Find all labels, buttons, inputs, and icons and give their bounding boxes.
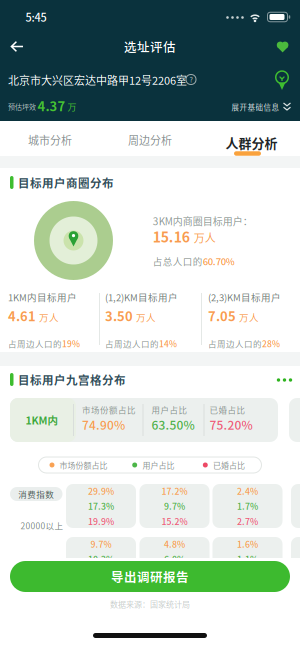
- staticText: 占周边人口的: [105, 337, 159, 350]
- staticText: 周边分析: [128, 132, 172, 148]
- staticText: 2.7%: [237, 515, 258, 527]
- staticText: 2.4%: [237, 484, 258, 497]
- staticText: 7.05: [208, 306, 236, 325]
- staticText: 消费指数: [18, 488, 54, 500]
- staticText: 13.1%: [88, 568, 114, 580]
- staticText: 4.61: [8, 306, 36, 325]
- staticText: (2,3)KM目标用户: [208, 290, 281, 304]
- staticText: 万人: [136, 310, 156, 324]
- staticText: 万人: [194, 230, 216, 246]
- staticText: 市场份额占比: [82, 403, 136, 416]
- staticText: 17.2%: [161, 484, 187, 497]
- staticText: 已婚占比: [213, 459, 245, 471]
- staticText: 占周边人口的: [208, 337, 262, 350]
- staticText: 人群分析: [225, 133, 277, 152]
- staticText: 19%: [62, 337, 80, 350]
- staticText: 预估坪效: [8, 101, 36, 111]
- button[interactable]: 人群分析: [221, 129, 281, 156]
- staticText: ?: [189, 74, 192, 84]
- staticText: 1KM内: [25, 412, 58, 428]
- staticText: 目标用户商圈分布: [18, 174, 114, 191]
- staticText: 用户占比: [142, 459, 174, 471]
- staticText: 4.8%: [164, 537, 185, 550]
- staticText: 1.6%: [237, 537, 258, 550]
- staticText: 1.1%: [237, 553, 258, 565]
- button[interactable]: Favorite: [271, 36, 294, 58]
- staticText: 已婚占比: [209, 403, 245, 416]
- staticText: 目标用户九宫格分布: [18, 371, 126, 388]
- staticText: 万人: [39, 310, 59, 324]
- staticText: 市场份额占比: [59, 459, 107, 471]
- staticText: 选址评估: [124, 37, 176, 55]
- staticText: 9.7%: [90, 537, 111, 550]
- staticText: 万人: [239, 310, 259, 324]
- staticText: 万: [67, 100, 76, 113]
- staticText: 19.9%: [88, 515, 114, 527]
- staticText: (1,2)KM目标用户: [105, 290, 178, 304]
- staticText: 城市分析: [28, 132, 72, 148]
- staticText: 4.37: [37, 96, 65, 115]
- staticText: 展开基础信息: [231, 102, 279, 112]
- staticText: 15.16: [153, 226, 190, 247]
- staticText: 导出调研报告: [111, 567, 189, 585]
- staticText: 63.50%: [151, 416, 194, 433]
- staticText: 29.9%: [88, 484, 114, 497]
- button[interactable]: 导出调研报告: [10, 561, 290, 592]
- staticText: 占周边人口的: [8, 337, 62, 350]
- staticText: 10.2%: [88, 553, 114, 565]
- staticText: 14%: [159, 337, 177, 350]
- staticText: 20000以上: [20, 519, 63, 532]
- staticText: 75.20%: [209, 416, 252, 433]
- button[interactable]: Help: [183, 71, 199, 87]
- staticText: 用户占比: [151, 403, 187, 416]
- staticText: 1KM内目标用户: [8, 290, 77, 304]
- staticText: 60.70%: [203, 254, 235, 268]
- staticText: 74.90%: [82, 416, 125, 433]
- staticText: 3KM内商圈目标用户：: [153, 214, 253, 228]
- staticText: 7.2%: [164, 568, 185, 580]
- staticText: 6.0%: [164, 553, 185, 565]
- button[interactable]: 展开基础信息: [231, 102, 291, 112]
- staticText: 3.50: [105, 306, 133, 325]
- button[interactable]: [10, 398, 278, 442]
- staticText: 17.3%: [88, 500, 114, 512]
- staticText: 9.7%: [164, 500, 185, 512]
- button[interactable]: Back: [4, 34, 30, 58]
- staticText: 15.2%: [161, 515, 187, 527]
- button[interactable]: More: [272, 373, 297, 387]
- staticText: 5:45: [25, 9, 46, 25]
- button[interactable]: 城市分析: [22, 126, 78, 154]
- staticText: 数据来源：国家统计局: [110, 598, 190, 610]
- button[interactable]: 周边分析: [122, 126, 178, 154]
- staticText: 28%: [262, 337, 280, 350]
- staticText: 占总人口的: [153, 254, 203, 268]
- staticText: 北京市大兴区宏达中路甲12号2206室: [8, 72, 187, 88]
- button[interactable]: Locate: [273, 70, 291, 92]
- staticText: 1.7%: [237, 500, 258, 512]
